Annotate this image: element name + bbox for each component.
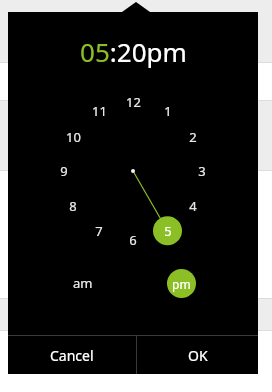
- button[interactable]: 3: [190, 161, 214, 181]
- staticText: 05:20pm: [80, 34, 187, 68]
- staticText: 3: [198, 162, 206, 180]
- button[interactable]: Clock face, select hour: [0, 0, 272, 392]
- staticText: 9: [60, 162, 68, 180]
- button[interactable]: 2: [181, 127, 205, 147]
- button[interactable]: 8: [61, 196, 85, 216]
- button[interactable]: 4: [181, 196, 205, 216]
- button[interactable]: 11: [87, 101, 111, 121]
- button[interactable]: 05:20pm: [8, 34, 258, 68]
- button[interactable]: 9: [52, 161, 76, 181]
- staticText: 4: [189, 197, 197, 215]
- staticText: 8: [69, 197, 77, 215]
- staticText: 12: [126, 93, 141, 111]
- button[interactable]: OK: [137, 336, 258, 374]
- staticText: 1: [164, 102, 172, 120]
- staticText: 2: [189, 128, 197, 146]
- button[interactable]: am: [63, 269, 103, 296]
- staticText: am: [73, 274, 93, 292]
- staticText: OK: [188, 346, 208, 365]
- button[interactable]: 7: [87, 221, 111, 241]
- button[interactable]: 12: [121, 92, 145, 112]
- staticText: 11: [92, 102, 107, 120]
- staticText: pm: [172, 276, 191, 292]
- staticText: 10: [66, 128, 81, 146]
- button[interactable]: pm: [167, 269, 196, 298]
- button[interactable]: 10: [61, 127, 85, 147]
- button[interactable]: 1: [156, 101, 180, 121]
- button[interactable]: 6: [121, 230, 145, 250]
- staticText: 7: [95, 222, 103, 240]
- button[interactable]: 5: [156, 221, 180, 241]
- staticText: 6: [129, 231, 137, 249]
- staticText: 5: [164, 222, 172, 240]
- staticText: Cancel: [50, 346, 94, 365]
- button[interactable]: Cancel: [8, 336, 136, 374]
